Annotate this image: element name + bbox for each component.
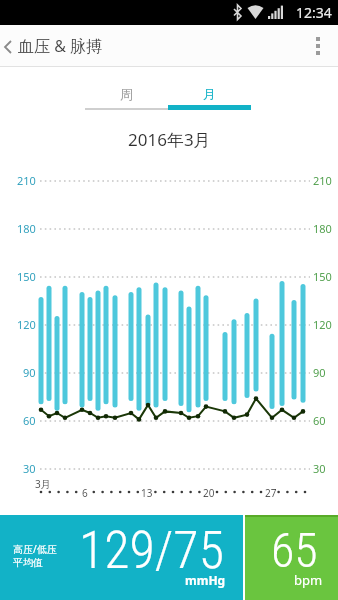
staticText: 高压/低压 xyxy=(13,542,57,556)
staticText: 13 xyxy=(141,486,153,500)
staticText: 129/75 xyxy=(79,520,224,581)
staticText: 2016年3月 xyxy=(128,128,211,151)
staticText: 60 xyxy=(313,413,326,428)
button[interactable] xyxy=(316,37,320,55)
staticText: 60 xyxy=(23,413,36,428)
button[interactable]: 血压 & 脉搏 xyxy=(0,25,338,66)
staticText: 30 xyxy=(23,461,36,476)
staticText: 12:34 xyxy=(296,3,332,22)
staticText: 血压 & 脉搏 xyxy=(18,35,103,57)
button[interactable]: 65 xyxy=(245,515,338,600)
staticText: 65 xyxy=(271,522,318,578)
staticText: 150 xyxy=(313,269,332,284)
button[interactable]: 周 xyxy=(85,80,168,110)
staticText: 180 xyxy=(313,221,332,236)
staticText: 180 xyxy=(17,221,36,236)
button[interactable]: 月 xyxy=(168,80,251,110)
staticText: 平均值 xyxy=(13,556,43,569)
staticText: 3月 xyxy=(35,477,51,491)
staticText: 周 xyxy=(120,86,133,102)
staticText: 150 xyxy=(17,269,36,284)
staticText: bpm xyxy=(294,571,323,589)
staticText: 6 xyxy=(82,486,88,500)
button[interactable]: 高压/低压 xyxy=(0,515,243,600)
staticText: mmHg xyxy=(185,572,226,588)
staticText: 月 xyxy=(203,86,216,102)
staticText: 120 xyxy=(313,317,332,332)
staticText: 30 xyxy=(313,461,326,476)
staticText: 27 xyxy=(265,486,277,500)
staticText: 210 xyxy=(313,173,332,188)
staticText: 20 xyxy=(203,486,215,500)
staticText: 90 xyxy=(23,365,36,380)
staticText: 90 xyxy=(313,365,326,380)
staticText: 210 xyxy=(17,173,36,188)
staticText: 120 xyxy=(17,317,36,332)
